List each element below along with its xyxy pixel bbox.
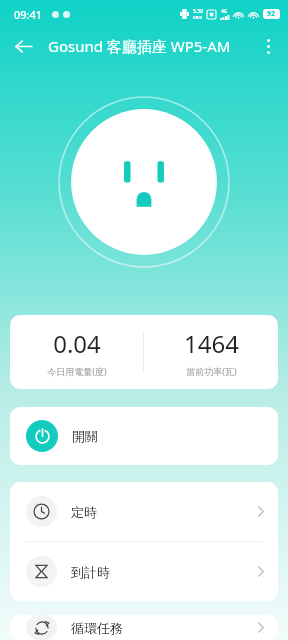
staticText: 1464 — [184, 327, 239, 360]
staticText: 5.30 — [193, 8, 203, 15]
button[interactable]: 定時 — [10, 482, 278, 541]
button[interactable]: More options — [252, 30, 284, 62]
staticText: 開關 — [72, 428, 98, 444]
staticText: Gosund 客廳插座 WP5-AM — [48, 36, 231, 56]
staticText: 循環任務 — [71, 620, 123, 636]
staticText: KB/S — [193, 15, 203, 20]
button[interactable]: 循環任務 — [10, 615, 278, 640]
staticText: 當前功率(瓦) — [186, 365, 237, 377]
button[interactable]: 到計時 — [10, 542, 278, 601]
button[interactable]: 0.04 — [10, 315, 278, 389]
staticText: 92 — [267, 9, 276, 19]
staticText: 定時 — [71, 504, 97, 520]
staticText: 4G — [221, 8, 228, 15]
button[interactable]: Back — [6, 29, 40, 63]
staticText: 今日用電量(度) — [47, 365, 107, 377]
staticText: 0.04 — [53, 327, 101, 360]
staticText: 到計時 — [71, 564, 110, 580]
button[interactable]: 開關 — [10, 407, 278, 465]
staticText: 09:41 — [14, 7, 43, 22]
